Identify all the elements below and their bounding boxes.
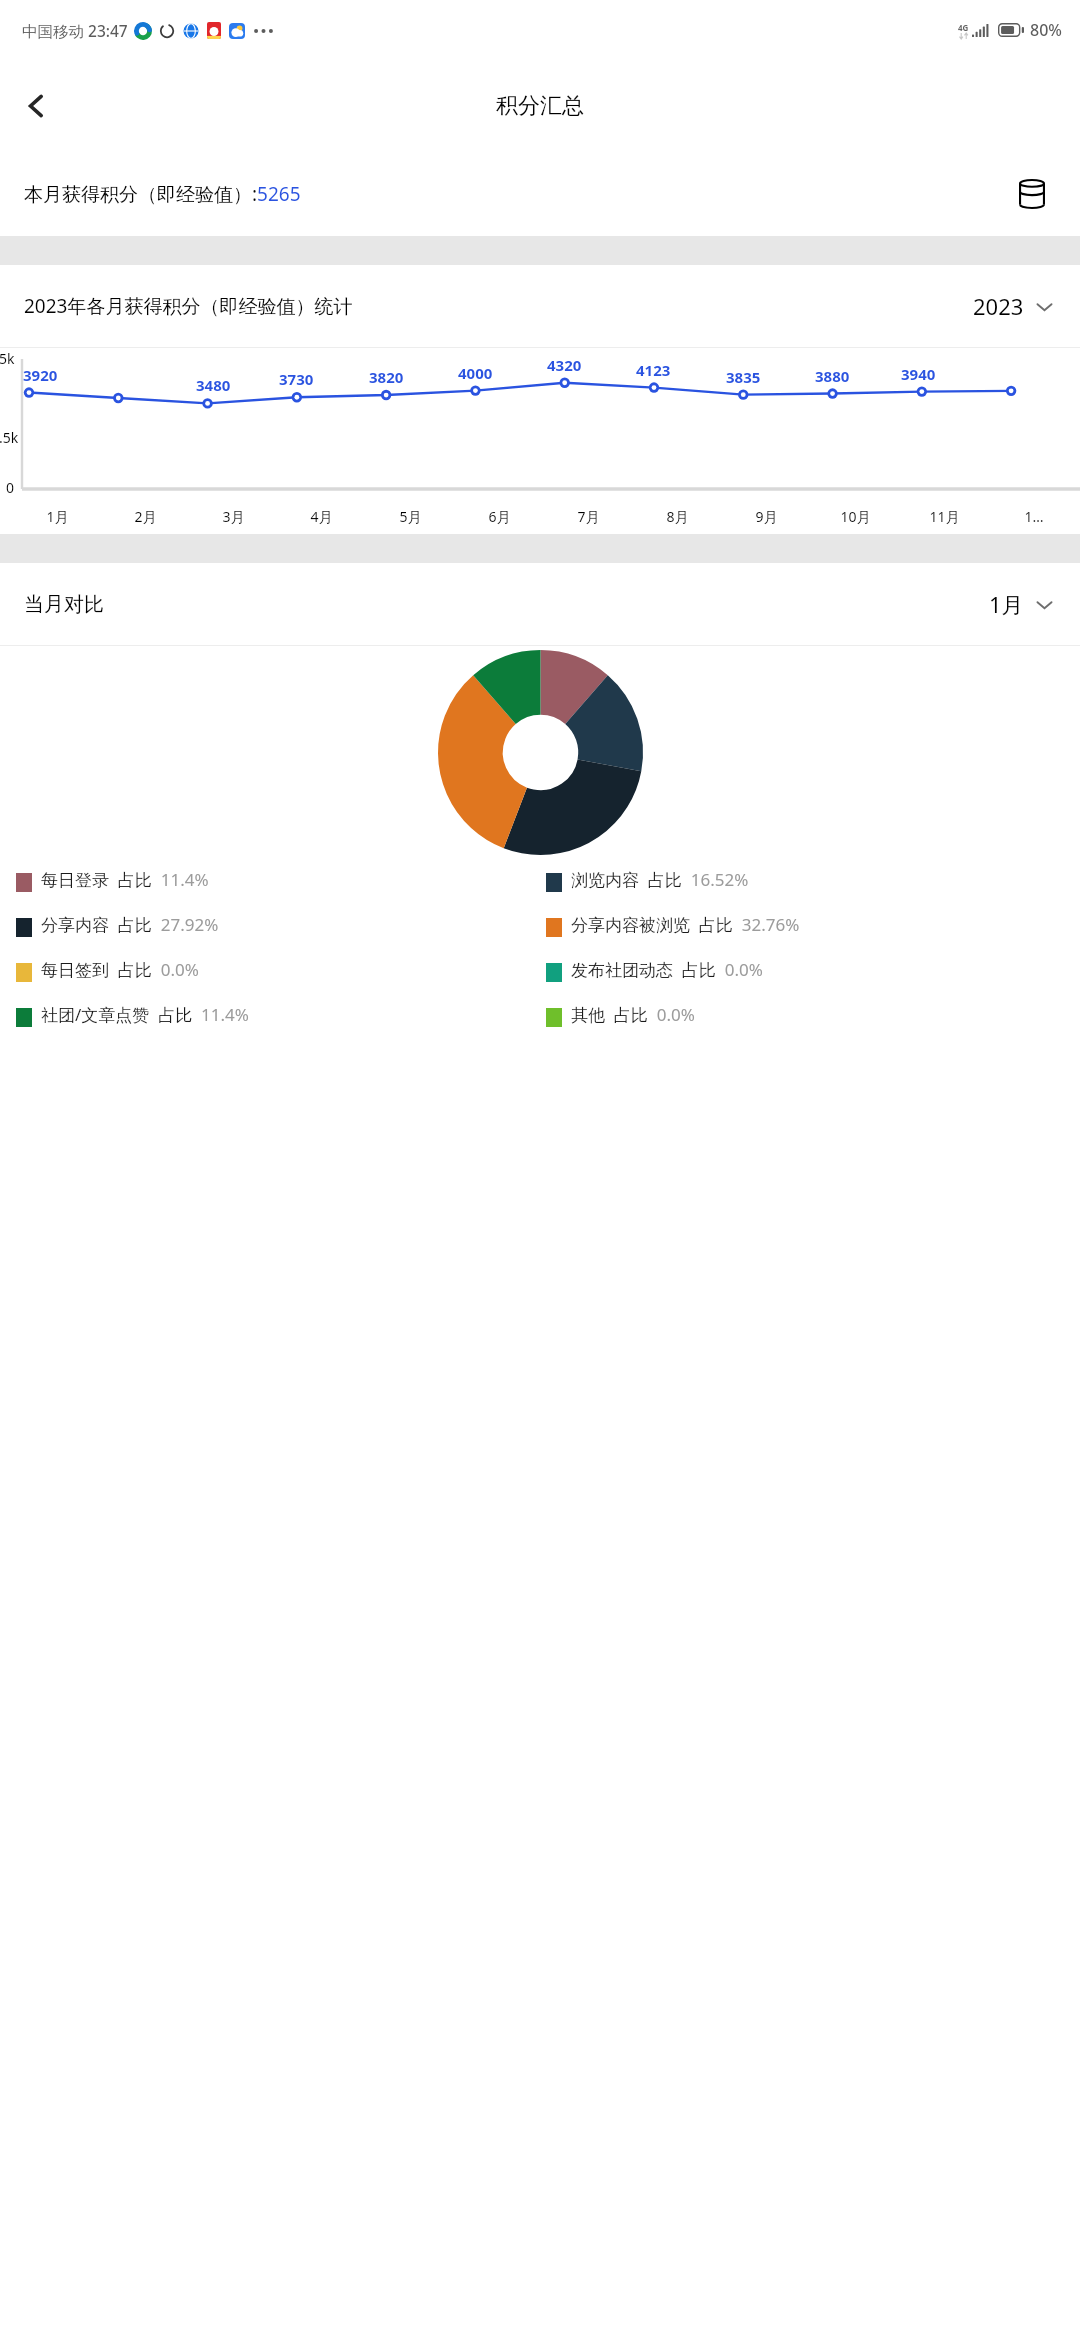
button[interactable]: 社团/文章点赞 占比 11.4% [12,1001,542,1029]
staticText: 1… [1024,507,1044,526]
staticText: 4320 [547,355,582,375]
staticText: 积分汇总 [496,92,584,120]
staticText: 3835 [726,367,761,387]
staticText: 当月对比 [24,592,104,617]
staticText: 4月 [310,507,333,526]
staticText: 3480 [196,375,231,395]
button[interactable]: 每日登录 占比 11.4% [12,866,542,894]
staticText: 3820 [369,367,404,387]
staticText: 发布社团动态 占比 0.0% [571,958,763,981]
button[interactable]: 返回 [6,76,66,136]
staticText: 8月 [666,507,689,526]
staticText: 7月 [577,507,600,526]
staticText: 1月 [989,589,1024,619]
staticText: 分享内容 占比 27.92% [41,913,219,936]
staticText: 10月 [840,507,871,526]
staticText: 5k [0,349,15,368]
staticText: 2.5k [0,428,19,447]
staticText: 中国移动 23:47 [22,20,128,41]
staticText: 6月 [488,507,511,526]
staticText: 2023年各月获得积分（即经验值）统计 [24,293,353,319]
staticText: 3940 [901,364,936,384]
staticText: 每日登录 占比 11.4% [41,868,209,891]
staticText: 本月获得积分（即经验值）:5265 [24,181,301,207]
button[interactable]: 每日签到 占比 0.0% [12,956,542,984]
button[interactable]: 1月 [987,581,1056,627]
button[interactable]: 发布社团动态 占比 0.0% [542,956,1072,984]
button[interactable]: 分享内容 占比 27.92% [12,911,542,939]
staticText: 4000 [458,363,493,383]
staticText: 2月 [134,507,157,526]
staticText: 分享内容被浏览 占比 32.76% [571,913,800,936]
staticText: 9月 [755,507,778,526]
staticText: 其他 占比 0.0% [571,1003,695,1026]
staticText: 0 [6,478,15,497]
button[interactable]: 分享内容被浏览 占比 32.76% [542,911,1072,939]
staticText: 3920 [23,365,58,385]
staticText: 3730 [279,369,314,389]
staticText: 80% [1030,19,1062,41]
staticText: 11月 [929,507,960,526]
button[interactable]: 2023 [971,283,1056,329]
staticText: 社团/文章点赞 占比 11.4% [41,1003,249,1026]
button[interactable]: 其他 占比 0.0% [542,1001,1072,1029]
staticText: 1月 [46,507,69,526]
staticText: 每日签到 占比 0.0% [41,958,199,981]
staticText: 4123 [636,360,671,380]
staticText: 4G [958,22,969,33]
button[interactable]: 浏览内容 占比 16.52% [542,866,1072,894]
staticText: 3880 [815,366,850,386]
staticText: 浏览内容 占比 16.52% [571,868,749,891]
staticText: 5月 [399,507,422,526]
button[interactable]: 积分记录 [1008,170,1056,218]
button[interactable]: 本月获得积分（即经验值）:5265 [0,152,1080,236]
staticText: 2023 [973,291,1024,321]
staticText: 3月 [222,507,245,526]
